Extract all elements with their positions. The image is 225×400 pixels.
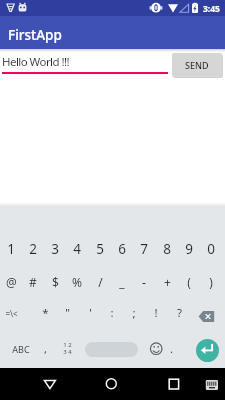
staticText: * [42, 305, 49, 321]
staticText: ? [177, 305, 182, 321]
button[interactable]: _ [111, 271, 133, 293]
button[interactable] [85, 342, 138, 357]
staticText: 1 2 3 4 [63, 341, 72, 356]
staticText: $ [52, 274, 59, 290]
staticText: 3:45 [203, 3, 220, 15]
staticText: FirstApp [8, 26, 62, 44]
button[interactable]: 6 [111, 238, 133, 260]
button[interactable] [195, 305, 221, 327]
button[interactable]: @ [0, 271, 22, 293]
staticText: + [164, 274, 171, 290]
button[interactable]: Hello World !!! [2, 52, 168, 71]
button[interactable]: . [161, 338, 181, 359]
button[interactable]: * [34, 302, 56, 324]
button[interactable]: FirstApp [0, 16, 225, 49]
button[interactable] [196, 339, 219, 362]
button[interactable]: $ [44, 271, 66, 293]
staticText: ) [209, 274, 213, 290]
button[interactable]: ABC [8, 338, 34, 359]
button[interactable] [202, 376, 222, 394]
button[interactable] [36, 372, 62, 397]
staticText: . [170, 341, 173, 356]
button[interactable]: SEND [172, 53, 222, 77]
staticText: ! [154, 305, 158, 321]
staticText: # [29, 274, 37, 290]
staticText: @ [6, 274, 17, 290]
staticText: =\< [5, 308, 18, 319]
button[interactable]: # [22, 271, 44, 293]
staticText: 3 [51, 240, 59, 258]
button[interactable]: % [66, 271, 88, 293]
button[interactable]: 1 2 3 4 [59, 338, 75, 359]
button[interactable]: 7 [133, 238, 155, 260]
staticText: ; [132, 305, 136, 321]
staticText: , [44, 341, 47, 356]
button[interactable]: " [56, 302, 78, 324]
button[interactable]: 8 [156, 238, 178, 260]
staticText: 9 [185, 240, 193, 258]
button[interactable] [146, 338, 166, 359]
staticText: 6 [118, 240, 126, 258]
button[interactable]: 9 [178, 238, 200, 260]
button[interactable]: 5 [89, 238, 111, 260]
button[interactable]: ? [168, 302, 190, 324]
button[interactable]: =\< [0, 302, 22, 324]
staticText: 2 [29, 240, 37, 258]
button[interactable]: ' [79, 302, 101, 324]
staticText: " [65, 305, 70, 321]
button[interactable]: : [101, 302, 123, 324]
button[interactable] [161, 372, 187, 397]
staticText: Hello World !!! [2, 54, 70, 70]
staticText: ABC [12, 343, 30, 355]
staticText: 0 [207, 240, 215, 258]
button[interactable]: ; [123, 302, 145, 324]
staticText: ( [187, 274, 191, 290]
staticText: 4 [73, 240, 81, 258]
staticText: 8 [163, 240, 171, 258]
staticText: / [98, 274, 103, 290]
button[interactable]: 3 [44, 238, 66, 260]
button[interactable]: ! [145, 302, 167, 324]
button[interactable]: - [133, 271, 155, 293]
button[interactable]: 1 [0, 238, 22, 260]
staticText: ' [89, 305, 92, 321]
staticText: : [110, 305, 114, 321]
button[interactable]: 4 [66, 238, 88, 260]
button[interactable]: 2 [22, 238, 44, 260]
staticText: 1 [7, 240, 15, 258]
button[interactable]: + [156, 271, 178, 293]
staticText: 5 [96, 240, 104, 258]
staticText: SEND [185, 59, 209, 71]
staticText: % [72, 274, 82, 290]
button[interactable] [99, 372, 125, 397]
staticText: 7 [140, 240, 148, 258]
button[interactable]: 0 [200, 238, 222, 260]
button[interactable]: / [89, 271, 111, 293]
button[interactable]: , [35, 338, 55, 359]
button[interactable]: ( [178, 271, 200, 293]
staticText: _ [119, 274, 125, 290]
button[interactable]: ) [200, 271, 222, 293]
staticText: - [142, 274, 146, 290]
